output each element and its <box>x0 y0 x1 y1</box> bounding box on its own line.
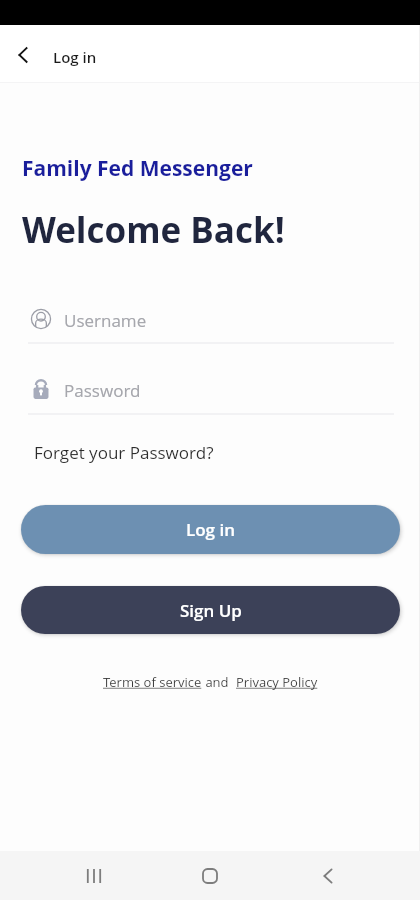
staticText: Password <box>64 379 141 402</box>
staticText: Log in <box>186 518 235 541</box>
staticText: and <box>202 673 236 691</box>
button[interactable]: Forget your Password? <box>34 441 214 464</box>
button[interactable]: Sign Up <box>21 586 400 634</box>
staticText: Privacy Policy <box>236 673 318 691</box>
button[interactable]: Recent apps <box>70 851 118 900</box>
staticText: Family Fed Messenger <box>22 154 253 183</box>
button[interactable]: Home <box>186 851 234 900</box>
button[interactable]: Back <box>304 851 352 900</box>
staticText: Sign Up <box>180 599 242 622</box>
button[interactable]: Log in <box>21 505 400 554</box>
staticText: Terms of service <box>103 673 202 691</box>
staticText: Forget your Password? <box>34 441 214 464</box>
staticText: Log in <box>53 47 97 67</box>
button[interactable]: Back <box>0 25 46 82</box>
button[interactable]: Terms of service <box>103 673 202 691</box>
staticText: Welcome Back! <box>22 206 285 254</box>
button[interactable]: Privacy Policy <box>236 673 318 691</box>
staticText: Username <box>64 309 147 332</box>
